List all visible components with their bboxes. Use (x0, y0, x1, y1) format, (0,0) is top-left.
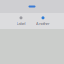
staticText: Another (36, 21, 50, 26)
staticText: Label (16, 21, 25, 26)
